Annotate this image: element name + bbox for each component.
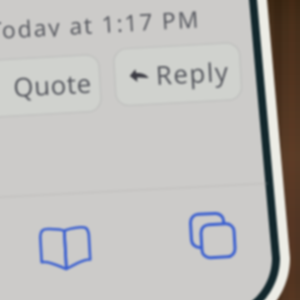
staticText: Today at 1:17 PM <box>0 2 201 40</box>
staticText: Reply <box>155 53 230 92</box>
button[interactable]: Library <box>38 226 92 271</box>
button[interactable]: Reply <box>113 42 242 106</box>
button[interactable]: Quote <box>0 54 102 120</box>
staticText: Quote <box>12 65 93 104</box>
button[interactable]: Tabs <box>188 211 237 260</box>
